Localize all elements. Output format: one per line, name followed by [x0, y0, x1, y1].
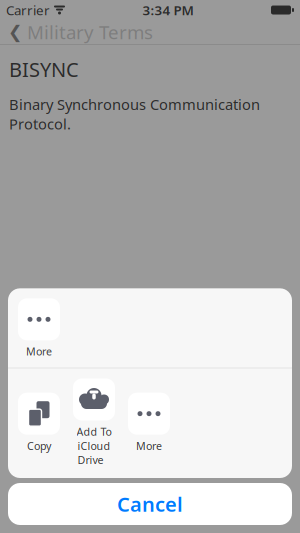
staticText: BISYNC	[9, 56, 79, 83]
button[interactable]: ❮	[0, 17, 161, 47]
button[interactable]: Add To	[73, 378, 115, 467]
staticText: Carrier	[6, 1, 50, 19]
button[interactable]: More	[128, 393, 170, 453]
button[interactable]: More	[18, 298, 60, 358]
staticText: Copy	[27, 439, 51, 453]
staticText: More	[136, 439, 162, 453]
staticText: Add To	[76, 424, 111, 439]
staticText: ❮	[8, 22, 23, 42]
staticText: Military Terms	[27, 20, 153, 44]
staticText: More	[26, 344, 52, 358]
button[interactable]: Copy	[18, 393, 60, 453]
staticText: Cancel	[117, 491, 183, 517]
staticText: iCloud Drive	[77, 439, 110, 467]
staticText: 3:34 PM	[142, 1, 193, 19]
button[interactable]: Cancel	[8, 483, 292, 525]
staticText: Binary Synchronous Communication Protoco…	[9, 95, 260, 134]
